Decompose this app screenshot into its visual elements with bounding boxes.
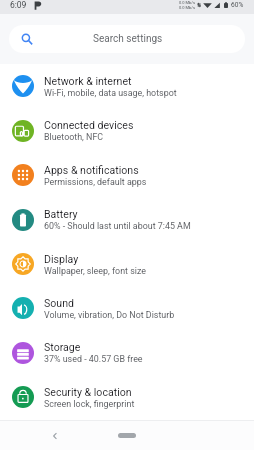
staticText: Volume, vibration, Do Not Disturb <box>44 310 175 320</box>
button[interactable]: Battery <box>0 197 254 242</box>
button[interactable]: Network & internet <box>0 64 254 108</box>
other: Search <box>21 33 33 45</box>
staticText: Sound <box>44 297 74 309</box>
staticText: Wi-Fi, mobile, data usage, hotspot <box>44 88 177 98</box>
staticText: 0.0 Mb/s <box>179 5 195 10</box>
staticText: 0.0 Mb/s <box>179 0 195 5</box>
staticText: 37% used - 40.57 GB free <box>44 354 143 364</box>
staticText: 60% - Should last until about 7:45 AM <box>44 221 191 231</box>
staticText: Search settings <box>93 33 163 45</box>
staticText: Storage <box>44 341 81 353</box>
staticText: Apps & notifications <box>44 164 139 176</box>
button[interactable]: Display <box>0 242 254 286</box>
button[interactable]: Back <box>45 426 65 446</box>
button[interactable]: Search <box>9 25 245 53</box>
staticText: Screen lock, fingerprint <box>44 399 135 409</box>
staticText: Display <box>44 253 79 265</box>
staticText: Connected devices <box>44 119 134 131</box>
button[interactable]: Security & location <box>0 375 254 419</box>
staticText: Battery <box>44 208 78 220</box>
button[interactable]: Connected devices <box>0 108 254 153</box>
button[interactable]: Home <box>118 433 136 438</box>
staticText: 6:09 <box>10 0 27 10</box>
button[interactable]: Storage <box>0 330 254 375</box>
staticText: 60% <box>231 1 244 9</box>
button[interactable]: Sound <box>0 286 254 330</box>
staticText: Permissions, default apps <box>44 177 147 187</box>
staticText: Security & location <box>44 386 132 398</box>
staticText: Wallpaper, sleep, font size <box>44 266 146 276</box>
button[interactable]: Apps & notifications <box>0 153 254 197</box>
staticText: Network & internet <box>44 75 132 87</box>
staticText: Bluetooth, NFC <box>44 132 104 142</box>
